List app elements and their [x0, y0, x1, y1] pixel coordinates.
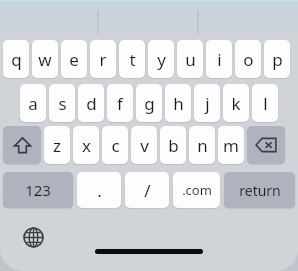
- button[interactable]: w: [32, 40, 58, 78]
- staticText: a: [28, 92, 38, 115]
- button[interactable]: b: [160, 126, 186, 164]
- staticText: q: [11, 48, 22, 71]
- button[interactable]: q: [3, 40, 29, 78]
- staticText: s: [58, 92, 67, 115]
- staticText: h: [173, 92, 184, 115]
- staticText: g: [144, 92, 155, 115]
- button[interactable]: h: [165, 84, 191, 122]
- staticText: e: [69, 48, 79, 71]
- button[interactable]: 123: [3, 172, 73, 208]
- staticText: n: [197, 134, 208, 157]
- button[interactable]: u: [177, 40, 203, 78]
- staticText: b: [168, 134, 179, 157]
- button[interactable]: r: [90, 40, 116, 78]
- staticText: r: [99, 48, 107, 71]
- staticText: u: [185, 48, 196, 71]
- button[interactable]: a: [20, 84, 46, 122]
- staticText: .: [97, 179, 102, 202]
- staticText: 123: [25, 180, 51, 200]
- button[interactable]: f: [107, 84, 133, 122]
- staticText: i: [217, 48, 222, 71]
- button[interactable]: c: [102, 126, 128, 164]
- staticText: y: [157, 48, 166, 71]
- button[interactable]: d: [78, 84, 104, 122]
- button[interactable]: Backspace: [247, 126, 285, 164]
- button[interactable]: y: [148, 40, 174, 78]
- button[interactable]: /: [125, 172, 169, 208]
- button[interactable]: .: [77, 172, 121, 208]
- staticText: p: [272, 48, 283, 71]
- button[interactable]: t: [119, 40, 145, 78]
- staticText: j: [205, 92, 210, 115]
- button[interactable]: .com: [173, 172, 220, 208]
- button[interactable]: l: [252, 84, 278, 122]
- staticText: x: [82, 134, 91, 157]
- staticText: z: [53, 134, 61, 157]
- staticText: f: [117, 92, 123, 115]
- button[interactable]: p: [264, 40, 290, 78]
- button[interactable]: return: [224, 172, 295, 208]
- button[interactable]: g: [136, 84, 162, 122]
- button[interactable]: j: [194, 84, 220, 122]
- button[interactable]: k: [223, 84, 249, 122]
- button[interactable]: Switch keyboard language: [18, 222, 48, 252]
- staticText: v: [140, 134, 149, 157]
- button[interactable]: e: [61, 40, 87, 78]
- button[interactable]: Shift: [3, 126, 41, 164]
- staticText: w: [38, 48, 52, 71]
- staticText: return: [239, 181, 281, 200]
- staticText: k: [231, 92, 241, 115]
- staticText: /: [144, 179, 151, 202]
- button[interactable]: n: [189, 126, 215, 164]
- button[interactable]: i: [206, 40, 232, 78]
- staticText: d: [86, 92, 97, 115]
- staticText: l: [263, 92, 268, 115]
- button[interactable]: x: [73, 126, 99, 164]
- staticText: .com: [182, 181, 212, 199]
- staticText: o: [243, 48, 254, 71]
- staticText: c: [111, 134, 120, 157]
- button[interactable]: s: [49, 84, 75, 122]
- button[interactable]: o: [235, 40, 261, 78]
- button[interactable]: m: [218, 126, 244, 164]
- staticText: t: [129, 48, 136, 71]
- button[interactable]: v: [131, 126, 157, 164]
- button[interactable]: z: [44, 126, 70, 164]
- staticText: m: [223, 134, 239, 157]
